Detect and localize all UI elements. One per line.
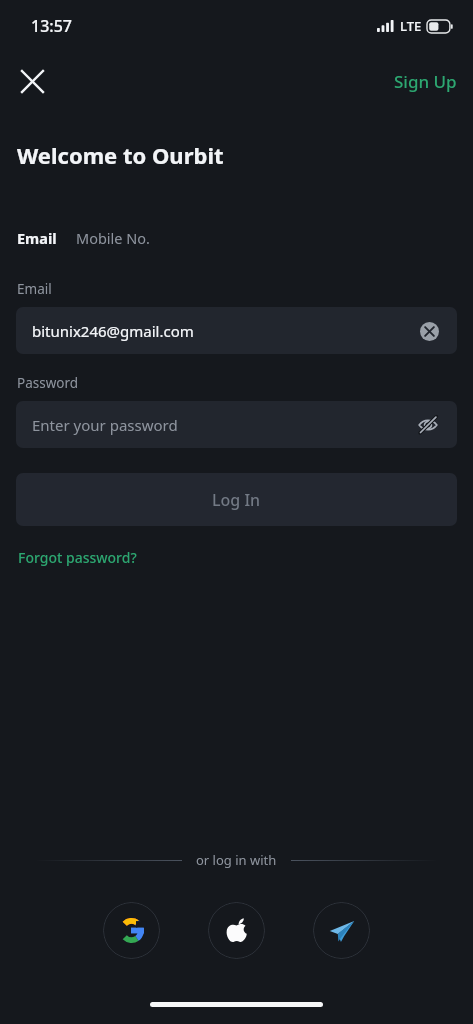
button[interactable]: Sign in with Apple — [208, 902, 265, 959]
staticText: Email — [17, 228, 57, 248]
staticText: bitunix246@gmail.com — [32, 321, 415, 341]
staticText: 13:57 — [31, 15, 72, 37]
button[interactable]: bitunix246@gmail.com — [16, 307, 457, 354]
staticText: Log In — [212, 489, 261, 511]
staticText: LTE — [400, 17, 422, 35]
button[interactable]: Log In — [16, 473, 457, 526]
staticText: Forgot password? — [18, 548, 137, 567]
staticText: Mobile No. — [76, 228, 150, 248]
button[interactable]: Email — [17, 224, 57, 252]
button[interactable]: Enter your password — [16, 401, 457, 448]
button[interactable]: Close — [8, 57, 56, 105]
button[interactable]: Show password — [413, 410, 443, 440]
button[interactable]: Sign in with Google — [103, 902, 160, 959]
staticText: Sign Up — [394, 70, 457, 93]
staticText: Email — [17, 280, 52, 298]
staticText: Welcome to Ourbit — [17, 140, 224, 170]
staticText: Enter your password — [32, 415, 413, 435]
button[interactable]: Sign Up — [378, 62, 473, 101]
button[interactable]: Sign in with Telegram — [313, 902, 370, 959]
staticText: Password — [17, 374, 79, 392]
button[interactable]: Clear email — [415, 317, 443, 345]
staticText: or log in with — [196, 851, 277, 869]
button[interactable]: Mobile No. — [76, 224, 150, 252]
button[interactable]: Forgot password? — [16, 545, 139, 570]
